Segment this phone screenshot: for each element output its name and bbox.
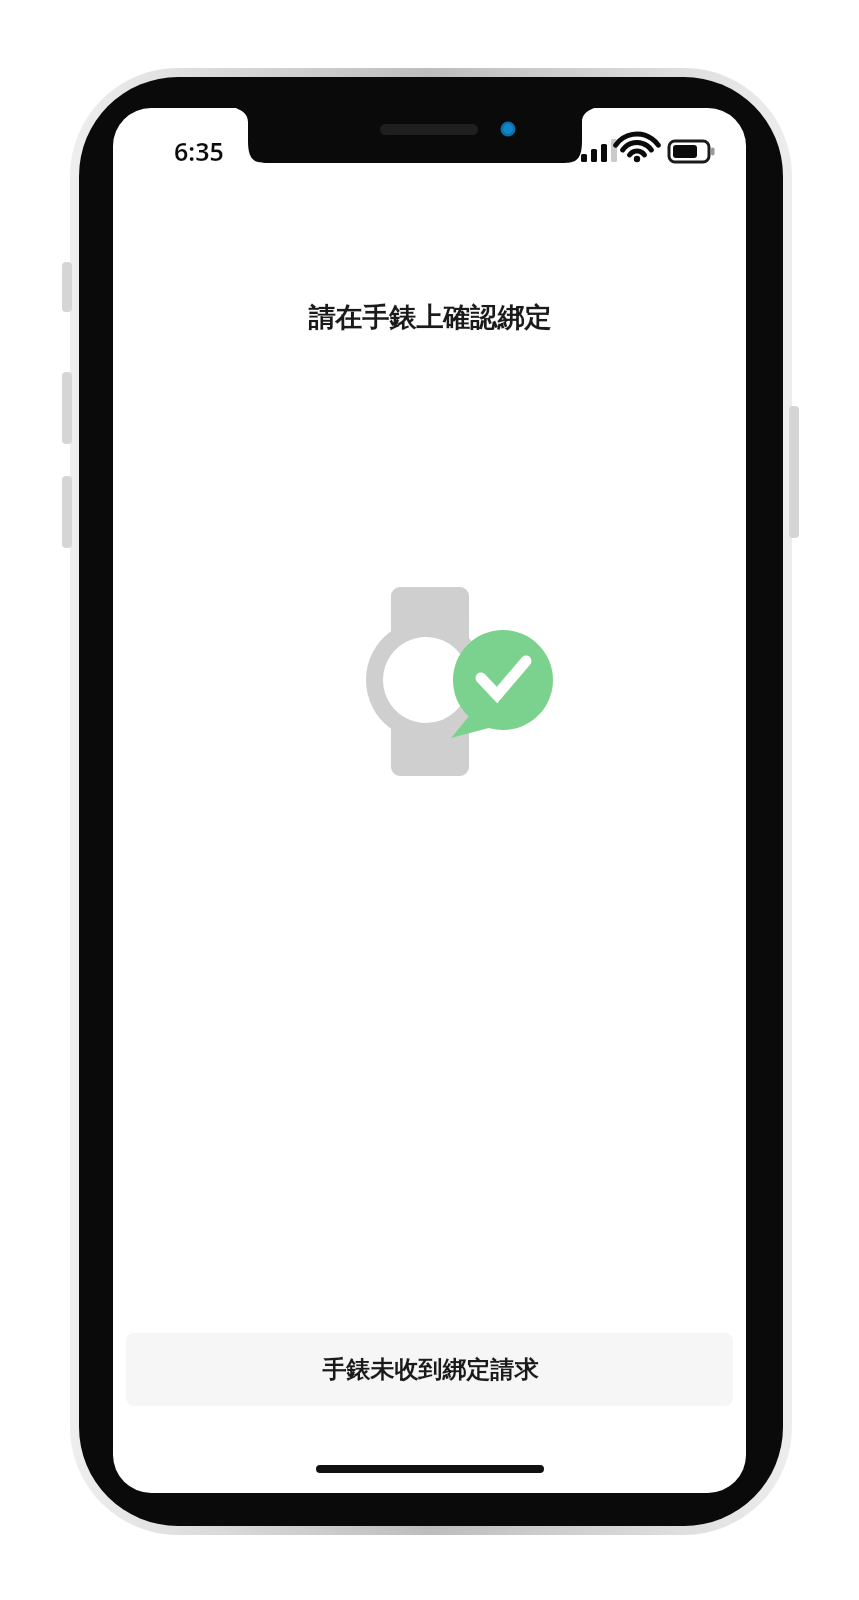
staticText: 6:35	[174, 134, 224, 168]
button[interactable]: 手錶未收到綁定請求	[126, 1333, 733, 1406]
staticText: 請在手錶上確認綁定	[308, 301, 551, 335]
other: Watch pairing confirmed	[356, 570, 556, 770]
staticText: 手錶未收到綁定請求	[322, 1355, 538, 1385]
